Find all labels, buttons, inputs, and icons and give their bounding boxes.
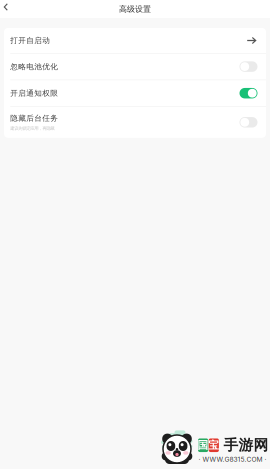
- staticText: 开启通知权限: [10, 88, 58, 98]
- button[interactable]: 打开自启动: [4, 28, 266, 53]
- button[interactable]: Back: [0, 0, 12, 18]
- staticText: 高级设置: [119, 4, 151, 14]
- staticText: 宝: [208, 438, 219, 452]
- staticText: 打开自启动: [10, 36, 50, 45]
- button[interactable]: 忽略电池优化: [4, 54, 266, 80]
- staticText: 国: [198, 438, 209, 452]
- staticText: 忽略电池优化: [10, 62, 58, 71]
- button[interactable]: 隐藏后台任务: [4, 107, 266, 138]
- staticText: 隐藏后台任务: [10, 113, 58, 123]
- staticText: 手游网: [224, 436, 269, 454]
- staticText: · WWW.G8315.COM ·: [198, 455, 266, 463]
- button[interactable]: 开启通知权限: [4, 80, 266, 106]
- staticText: 建议先锁定应用，再隐藏: [10, 126, 54, 131]
